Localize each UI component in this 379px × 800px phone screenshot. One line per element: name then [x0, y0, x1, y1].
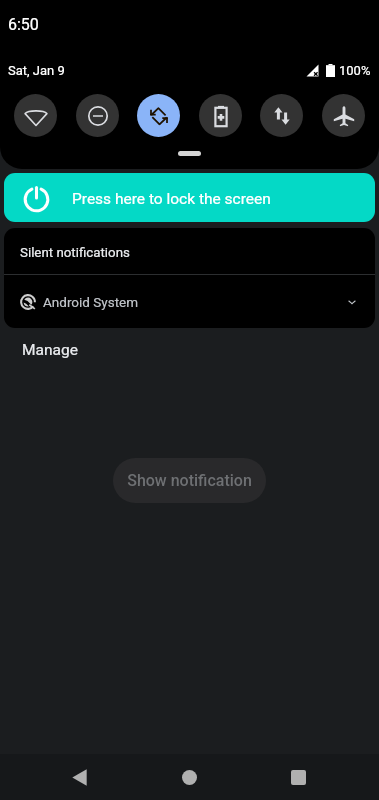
button[interactable]: Do not disturb — [76, 94, 119, 137]
button[interactable]: Press here to lock the screen — [4, 173, 375, 222]
button[interactable]: Manage — [0, 330, 379, 370]
other: Expand — [346, 296, 358, 308]
staticText: 6:50 — [8, 15, 39, 34]
button[interactable]: Mobile data — [260, 94, 303, 137]
staticText: Press here to lock the screen — [72, 190, 271, 208]
staticText: Manage — [22, 341, 78, 359]
button[interactable]: Wi-Fi — [14, 94, 57, 137]
staticText: Android System — [43, 294, 139, 310]
button[interactable]: Home — [167, 754, 212, 800]
staticText: 100% — [339, 63, 371, 78]
staticText: Silent notifications — [20, 245, 130, 261]
button[interactable]: Android System — [4, 275, 375, 328]
staticText: Show notification — [127, 471, 252, 490]
button[interactable]: Battery saver — [199, 94, 242, 137]
staticText: Sat, Jan 9 — [8, 63, 65, 78]
button[interactable]: Airplane mode — [322, 94, 365, 137]
button[interactable]: Show notification — [113, 458, 266, 503]
button[interactable]: Recent apps — [276, 754, 321, 800]
button[interactable]: Back — [57, 754, 102, 800]
button[interactable]: Auto-rotate — [137, 94, 180, 137]
button[interactable]: Silent notifications — [4, 228, 375, 274]
